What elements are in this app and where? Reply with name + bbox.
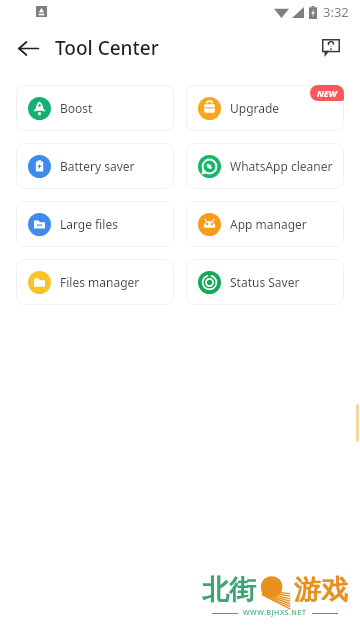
button[interactable]: WhatsApp cleaner (186, 143, 344, 189)
staticText: Battery saver (60, 158, 135, 174)
staticText: 北街 (202, 573, 256, 607)
button[interactable]: Files manager (16, 259, 174, 305)
staticText: Status Saver (230, 274, 300, 290)
staticText: App manager (230, 216, 307, 232)
button[interactable]: Boost (16, 85, 174, 131)
button[interactable]: Status Saver (186, 259, 344, 305)
staticText: Tool Center (55, 35, 159, 61)
button[interactable]: App manager (186, 201, 344, 247)
staticText: Boost (60, 100, 93, 116)
button[interactable]: Upgrade (186, 85, 344, 131)
button[interactable]: Back (8, 28, 48, 68)
button[interactable]: Large files (16, 201, 174, 247)
staticText: Upgrade (230, 100, 280, 116)
staticText: WhatsApp cleaner (230, 158, 333, 174)
staticText: NEW (317, 87, 337, 99)
button[interactable]: Help and feedback (311, 28, 351, 68)
button[interactable]: Battery saver (16, 143, 174, 189)
staticText: WWW.BJHXS.NET (243, 608, 307, 618)
staticText: Files manager (60, 274, 140, 290)
staticText: Large files (60, 216, 118, 232)
staticText: 3:32 (323, 3, 349, 21)
staticText: 游戏 (294, 573, 348, 607)
